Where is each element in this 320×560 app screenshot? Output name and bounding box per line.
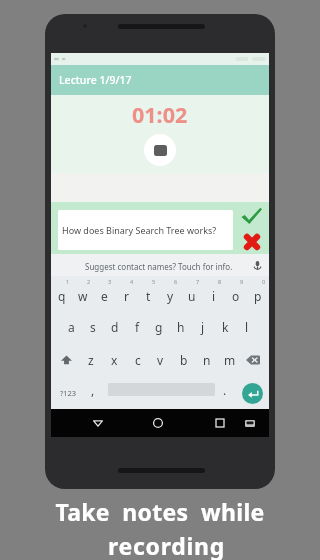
button[interactable]: d [104, 310, 126, 343]
button[interactable]: j [192, 310, 214, 343]
button[interactable]: Enter [237, 378, 267, 408]
staticText: , [91, 382, 95, 398]
staticText: r [124, 288, 129, 304]
button[interactable]: m [218, 343, 241, 376]
staticText: p [254, 288, 262, 304]
staticText: w [78, 288, 88, 304]
staticText: t [146, 288, 151, 304]
button[interactable]: 9 [225, 276, 247, 310]
staticText: x [111, 352, 118, 368]
staticText: l [245, 319, 249, 335]
button[interactable]: 4 [115, 276, 137, 310]
button[interactable]: x [103, 343, 126, 376]
button[interactable]: 6 [159, 276, 181, 310]
button[interactable]: 0 [247, 276, 269, 310]
staticText: v [157, 352, 164, 368]
staticText: j [201, 319, 205, 335]
staticText: 0 [262, 278, 266, 285]
staticText: u [188, 288, 196, 304]
button[interactable]: c [126, 343, 149, 376]
button[interactable]: b [172, 343, 195, 376]
button[interactable]: l [236, 310, 258, 343]
staticText: s [90, 319, 96, 335]
staticText: 5 [152, 278, 156, 285]
staticText: k [222, 319, 229, 335]
button[interactable]: z [79, 343, 103, 376]
button[interactable]: Symbols [53, 378, 83, 408]
staticText: b [180, 352, 188, 368]
button[interactable]: n [195, 343, 218, 376]
button[interactable]: Accept note [241, 207, 262, 225]
button[interactable]: Stop recording [144, 134, 176, 166]
staticText: c [135, 352, 141, 368]
staticText: m [224, 352, 236, 368]
button[interactable]: Back [88, 413, 108, 433]
button[interactable]: Recent apps [210, 413, 230, 433]
staticText: f [135, 319, 140, 335]
staticText: ?123 [60, 388, 77, 398]
button[interactable]: 8 [203, 276, 225, 310]
staticText: 2 [87, 278, 91, 285]
staticText: Suggest contact names? Touch for info. [85, 261, 233, 272]
button[interactable]: a [61, 310, 82, 343]
staticText: a [68, 319, 75, 335]
staticText: Take notes while [55, 496, 265, 527]
staticText: g [155, 319, 163, 335]
staticText: o [232, 288, 240, 304]
staticText: 1 [66, 278, 70, 285]
staticText: 8 [218, 278, 222, 285]
button[interactable]: k [214, 310, 236, 343]
staticText: 9 [240, 278, 244, 285]
button[interactable]: , [83, 378, 103, 408]
button[interactable]: Home [148, 413, 168, 433]
button[interactable]: g [148, 310, 170, 343]
staticText: z [88, 352, 94, 368]
staticText: e [101, 288, 108, 304]
staticText: recording [108, 530, 225, 560]
button[interactable]: Discard note [243, 234, 261, 250]
button[interactable]: 3 [93, 276, 115, 310]
staticText: 6 [174, 278, 178, 285]
button[interactable]: 5 [137, 276, 159, 310]
staticText: . [223, 382, 227, 398]
button[interactable]: f [126, 310, 148, 343]
button[interactable]: . [215, 378, 235, 408]
button[interactable]: 1 [51, 276, 72, 310]
button[interactable]: Lecture 1/9/17 [51, 65, 269, 95]
staticText: 3 [108, 278, 112, 285]
staticText: 4 [130, 278, 134, 285]
button[interactable]: Switch keyboard [240, 413, 260, 433]
button[interactable]: How does Binary Search Tree works? [58, 210, 233, 250]
staticText: 01:02 [132, 100, 188, 129]
staticText: q [58, 288, 66, 304]
staticText: Lecture 1/9/17 [59, 73, 132, 87]
button[interactable]: 2 [72, 276, 93, 310]
staticText: d [111, 319, 119, 335]
staticText: n [203, 352, 211, 368]
button[interactable]: Voice input [252, 260, 263, 271]
button[interactable]: v [149, 343, 172, 376]
button[interactable]: Backspace [239, 345, 267, 375]
staticText: i [212, 288, 216, 304]
staticText: 7 [196, 278, 200, 285]
button[interactable]: Shift [52, 345, 80, 375]
button[interactable]: s [82, 310, 104, 343]
staticText: h [177, 319, 185, 335]
staticText: y [167, 288, 174, 304]
staticText: How does Binary Search Tree works? [62, 224, 217, 236]
button[interactable]: 7 [181, 276, 203, 310]
button[interactable]: h [170, 310, 192, 343]
